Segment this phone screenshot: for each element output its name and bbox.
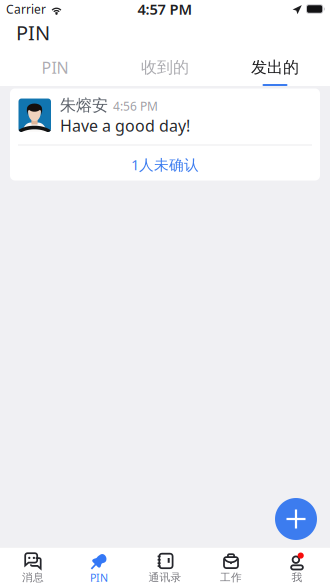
button[interactable]: 收到的: [110, 54, 220, 86]
button[interactable]: 1人未确认: [10, 145, 320, 180]
staticText: PIN: [16, 19, 50, 46]
staticText: 4:57 PM: [137, 0, 192, 19]
button[interactable]: PIN: [66, 547, 132, 586]
staticText: 收到的: [141, 58, 189, 77]
staticText: 工作: [220, 571, 242, 584]
staticText: 朱熔安: [60, 96, 108, 115]
staticText: 消息: [22, 571, 44, 584]
button[interactable]: 工作: [198, 547, 264, 586]
button[interactable]: 通讯录: [132, 547, 198, 586]
button[interactable]: 我: [264, 547, 330, 586]
staticText: Have a good day!: [60, 115, 190, 136]
staticText: 1人未确认: [131, 155, 199, 174]
staticText: PIN: [41, 57, 68, 78]
staticText: 发出的: [251, 58, 299, 77]
staticText: Carrier: [6, 1, 46, 17]
staticText: 我: [291, 571, 302, 584]
button[interactable]: 消息: [0, 547, 66, 586]
button[interactable]: 发出的: [220, 54, 330, 86]
button[interactable]: New PIN: [275, 498, 317, 540]
button[interactable]: PIN: [0, 54, 110, 86]
staticText: 4:56 PM: [113, 98, 158, 114]
staticText: 通讯录: [148, 571, 181, 584]
staticText: PIN: [90, 570, 108, 585]
